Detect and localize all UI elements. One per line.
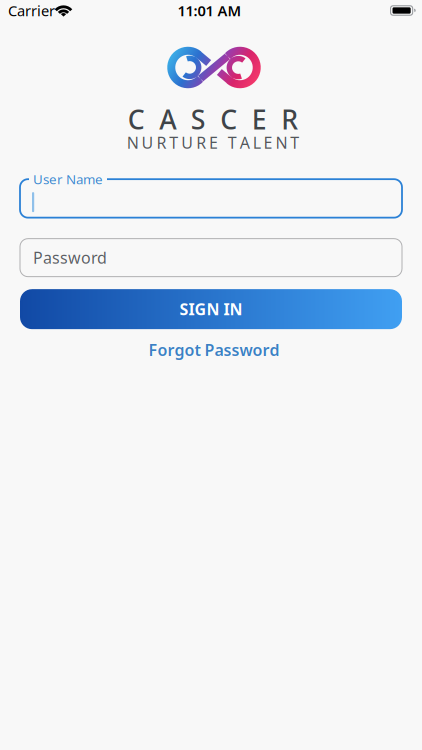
button[interactable]: Forgot Password — [145, 339, 276, 360]
staticText: E — [209, 132, 218, 153]
staticText: Password — [33, 247, 107, 268]
staticText: N — [275, 132, 287, 153]
staticText: U — [181, 132, 193, 153]
staticText: E — [264, 132, 273, 153]
staticText: T — [290, 132, 299, 153]
staticText: T — [228, 132, 237, 153]
staticText: CASCER — [128, 101, 298, 137]
staticText: T — [169, 132, 178, 153]
staticText: U — [142, 132, 154, 153]
button[interactable]: Password — [20, 239, 402, 277]
staticText: 11:01 AM — [177, 1, 241, 20]
staticText: R — [156, 132, 166, 153]
button[interactable]: SIGN IN — [20, 289, 402, 329]
staticText: R — [196, 132, 206, 153]
staticText: User Name — [33, 170, 103, 188]
staticText: N — [127, 132, 139, 153]
staticText: Forgot Password — [148, 339, 279, 360]
button[interactable]: User Name — [20, 179, 402, 218]
staticText: Carrier — [8, 1, 55, 20]
staticText: A — [240, 132, 250, 153]
staticText: SIGN IN — [179, 298, 242, 320]
staticText: L — [253, 132, 261, 153]
